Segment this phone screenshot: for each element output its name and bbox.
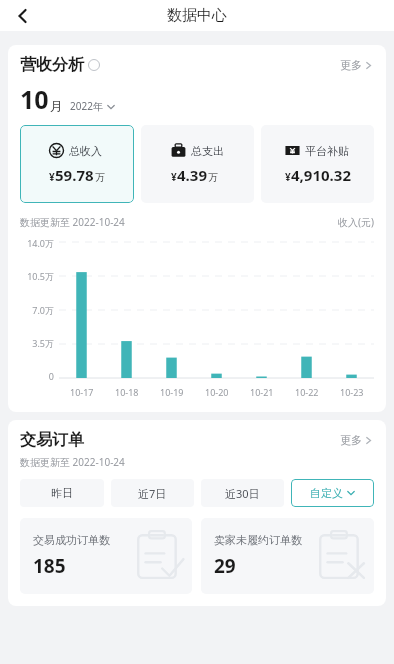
button[interactable]: 卖家未履约订单数 — [201, 518, 374, 594]
staticText: 4,910.32 — [291, 165, 351, 185]
staticText: 10-21 — [250, 386, 274, 398]
staticText: 交易成功订单数 — [33, 533, 110, 547]
staticText: ¥ — [49, 170, 55, 184]
staticText: 10-23 — [340, 386, 364, 398]
button[interactable]: 10 — [20, 81, 115, 117]
staticText: 4.39 — [177, 165, 207, 185]
staticText: 平台补贴 — [305, 144, 349, 158]
staticText: 14.0万 — [27, 237, 54, 249]
button[interactable]: 总支出 — [141, 125, 254, 203]
staticText: 数据更新至 2022-10-24 — [20, 215, 125, 229]
staticText: 2022年 — [70, 99, 103, 113]
staticText: 卖家未履约订单数 — [214, 533, 302, 547]
staticText: 更多 — [340, 58, 362, 72]
staticText: 营收分析 — [20, 55, 84, 75]
staticText: 数据更新至 2022-10-24 — [20, 455, 125, 469]
staticText: 收入(元) — [338, 215, 374, 229]
staticText: 0 — [48, 370, 54, 382]
staticText: ¥ — [171, 170, 177, 184]
staticText: 总收入 — [69, 144, 102, 158]
staticText: 185 — [33, 553, 66, 579]
staticText: 万 — [208, 171, 218, 184]
staticText: 7.0万 — [32, 304, 54, 316]
staticText: 29 — [214, 553, 236, 579]
staticText: 10-19 — [160, 386, 184, 398]
staticText: 昨日 — [51, 486, 73, 500]
staticText: 自定义 — [310, 486, 343, 500]
button[interactable]: 总收入 — [20, 125, 134, 203]
staticText: 总支出 — [191, 144, 224, 158]
staticText: 更多 — [340, 433, 362, 447]
staticText: 交易订单 — [20, 430, 84, 450]
button[interactable]: 更多 — [338, 55, 374, 75]
staticText: 10-17 — [70, 386, 94, 398]
staticText: 近30日 — [225, 486, 260, 501]
staticText: 10-22 — [295, 386, 319, 398]
staticText: 数据中心 — [167, 6, 227, 25]
staticText: 万 — [95, 171, 105, 184]
staticText: 10-18 — [115, 386, 139, 398]
button[interactable]: Back — [6, 0, 40, 31]
staticText: 59.78 — [55, 165, 94, 185]
staticText: 10 — [20, 82, 49, 116]
staticText: 月 — [50, 98, 63, 114]
staticText: 10.5万 — [27, 270, 54, 282]
staticText: 10-20 — [205, 386, 229, 398]
button[interactable]: 交易成功订单数 — [20, 518, 192, 594]
staticText: 3.5万 — [32, 337, 54, 349]
button[interactable]: 自定义 — [291, 479, 374, 507]
button[interactable]: 平台补贴 — [261, 125, 374, 203]
staticText: ¥ — [285, 170, 291, 184]
button[interactable]: 近7日 — [111, 479, 194, 507]
button[interactable]: 昨日 — [20, 479, 104, 507]
button[interactable]: 更多 — [338, 430, 374, 450]
staticText: 近7日 — [138, 486, 167, 501]
button[interactable]: 近30日 — [201, 479, 284, 507]
